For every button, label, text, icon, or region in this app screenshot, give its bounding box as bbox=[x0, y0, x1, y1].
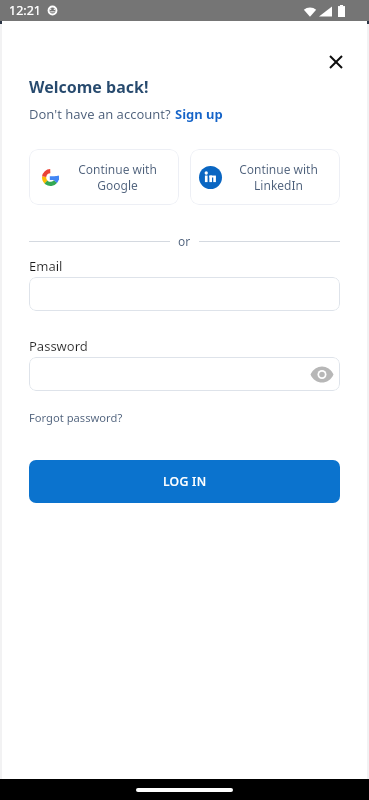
button[interactable]: Continue with LinkedIn bbox=[190, 149, 340, 205]
button[interactable]: Show password bbox=[29, 357, 340, 391]
staticText: Email bbox=[29, 257, 63, 275]
button[interactable]: Show password bbox=[308, 363, 336, 385]
staticText: 12:21 bbox=[9, 2, 41, 19]
staticText: Don't have an account? bbox=[29, 105, 175, 123]
button[interactable]: Continue with Google bbox=[29, 149, 179, 205]
button[interactable] bbox=[29, 277, 340, 311]
staticText: Password bbox=[29, 337, 88, 355]
button[interactable]: Close bbox=[322, 50, 348, 76]
button[interactable]: Forgot password? bbox=[29, 410, 123, 425]
staticText: Welcome back! bbox=[29, 76, 149, 98]
staticText: or bbox=[178, 233, 191, 249]
staticText: Continue with LinkedIn bbox=[239, 161, 318, 194]
button[interactable]: Sign up bbox=[175, 105, 223, 123]
staticText: LOG IN bbox=[163, 473, 207, 490]
button[interactable]: LOG IN bbox=[29, 460, 340, 503]
staticText: Continue with Google bbox=[78, 161, 157, 194]
